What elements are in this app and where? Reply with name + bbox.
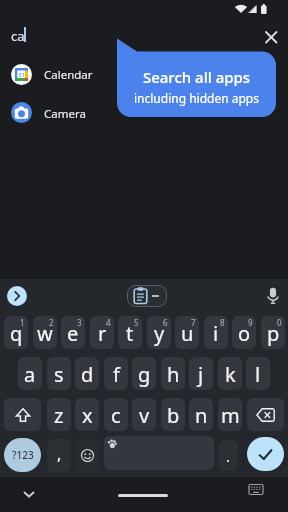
staticText: q: [10, 320, 23, 347]
button[interactable]: g: [132, 357, 156, 390]
button[interactable]: h: [161, 357, 185, 390]
staticText: ca: [11, 27, 25, 45]
staticText: k: [225, 361, 236, 388]
staticText: l: [255, 361, 261, 388]
button[interactable]: y: [147, 316, 171, 349]
button[interactable]: [246, 482, 266, 498]
button[interactable]: n: [189, 398, 213, 431]
button[interactable]: u: [175, 316, 199, 349]
button[interactable]: [19, 484, 39, 504]
button[interactable]: m: [218, 398, 242, 431]
staticText: r: [98, 320, 107, 347]
button[interactable]: [261, 27, 281, 47]
staticText: u: [181, 320, 194, 347]
staticText: h: [167, 361, 180, 388]
button[interactable]: c: [104, 398, 128, 431]
staticText: g: [138, 361, 151, 388]
button[interactable]: k: [218, 357, 242, 390]
staticText: 31: [18, 71, 25, 79]
staticText: n: [195, 402, 208, 429]
button[interactable]: v: [132, 398, 156, 431]
staticText: 9: [248, 317, 253, 328]
button[interactable]: x: [75, 398, 99, 431]
staticText: p: [267, 320, 280, 347]
button[interactable]: z: [47, 398, 71, 431]
button[interactable]: [7, 286, 27, 306]
staticText: y: [154, 320, 165, 347]
button[interactable]: 31: [0, 60, 112, 90]
staticText: a: [24, 361, 36, 388]
button[interactable]: e: [61, 316, 85, 349]
staticText: 6: [163, 317, 168, 328]
staticText: e: [67, 320, 79, 347]
staticText: f: [113, 361, 120, 388]
button[interactable]: w: [33, 316, 57, 349]
staticText: 3: [77, 317, 82, 328]
staticText: w: [37, 320, 53, 347]
staticText: z: [54, 402, 64, 429]
staticText: 2: [49, 317, 54, 328]
staticText: o: [238, 320, 251, 347]
staticText: Camera: [44, 106, 86, 122]
button[interactable]: ?123: [4, 438, 41, 472]
staticText: 4: [106, 317, 111, 328]
button[interactable]: Camera: [0, 99, 112, 129]
button[interactable]: j: [189, 357, 213, 390]
button[interactable]: o: [232, 316, 256, 349]
staticText: i: [213, 320, 219, 347]
button[interactable]: s: [47, 357, 71, 390]
button[interactable]: [247, 398, 284, 431]
staticText: m: [221, 402, 240, 429]
staticText: 1: [20, 317, 25, 328]
staticText: .: [226, 446, 231, 466]
staticText: x: [82, 402, 93, 429]
button[interactable]: [104, 436, 214, 470]
staticText: t: [126, 320, 134, 347]
button[interactable]: a: [18, 357, 42, 390]
button[interactable]: [247, 437, 284, 471]
staticText: Search all apps: [117, 67, 276, 87]
button[interactable]: ,: [47, 439, 71, 472]
staticText: 0: [277, 317, 282, 328]
button[interactable]: d: [75, 357, 99, 390]
button[interactable]: .: [219, 440, 238, 471]
button[interactable]: b: [161, 398, 185, 431]
staticText: v: [139, 402, 150, 429]
button[interactable]: [4, 398, 41, 431]
button[interactable]: l: [246, 357, 270, 390]
staticText: 5: [134, 317, 139, 328]
staticText: including hidden apps: [117, 90, 276, 106]
staticText: 7: [191, 317, 196, 328]
staticText: c: [111, 402, 121, 429]
button[interactable]: i: [204, 316, 228, 349]
staticText: ?123: [12, 448, 34, 462]
button[interactable]: q: [4, 316, 28, 349]
button[interactable]: p: [261, 316, 285, 349]
button[interactable]: f: [104, 357, 128, 390]
staticText: j: [198, 361, 204, 388]
button[interactable]: t: [118, 316, 142, 349]
button[interactable]: r: [90, 316, 114, 349]
staticText: ,: [57, 443, 62, 465]
button[interactable]: [75, 439, 99, 472]
button[interactable]: [127, 285, 167, 307]
staticText: 8: [220, 317, 225, 328]
staticText: d: [81, 361, 94, 388]
button[interactable]: Search all apps: [117, 38, 276, 118]
staticText: s: [54, 361, 64, 388]
staticText: Calendar: [44, 67, 93, 83]
staticText: b: [167, 402, 180, 429]
